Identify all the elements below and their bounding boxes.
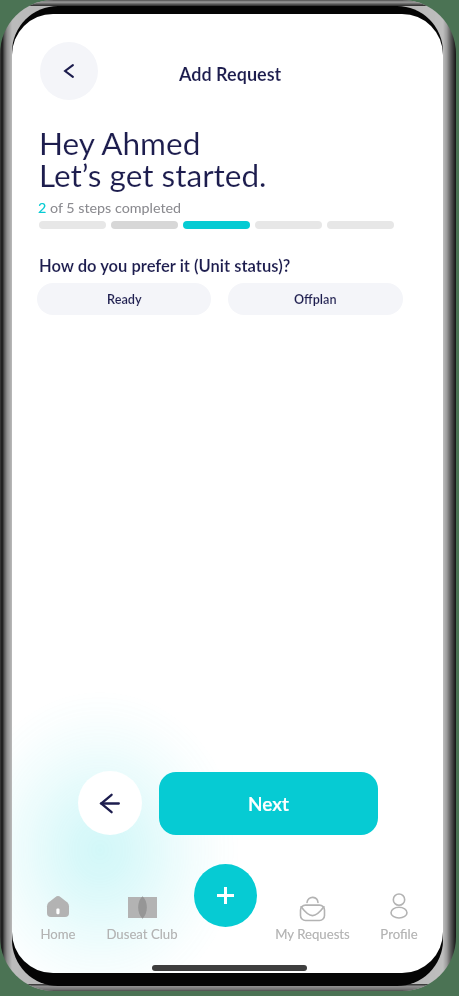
staticText: Ready [107,292,142,307]
button[interactable]: Previous step [78,771,142,835]
staticText: Home [40,926,76,942]
button[interactable]: Duseat Club [97,880,187,952]
staticText: Duseat Club [106,926,178,942]
staticText: My Requests [275,926,350,942]
staticText: Offplan [294,292,337,307]
button[interactable]: Ready [37,283,211,315]
button[interactable]: Profile [354,880,443,952]
staticText: How do you prefer it (Unit status)? [39,256,291,276]
button[interactable]: Add [194,864,257,927]
button[interactable]: Back [40,42,98,100]
button[interactable]: My Requests [267,880,357,952]
staticText: 2 of 5 steps completed [38,199,182,216]
staticText: Next [248,792,289,815]
button[interactable]: Home [13,880,103,952]
staticText: Profile [380,926,418,942]
button[interactable]: Offplan [228,283,403,315]
staticText: Hey Ahmed Let’s get started. [39,124,267,194]
staticText: Add Request [179,63,282,85]
button[interactable]: Next [159,772,378,835]
